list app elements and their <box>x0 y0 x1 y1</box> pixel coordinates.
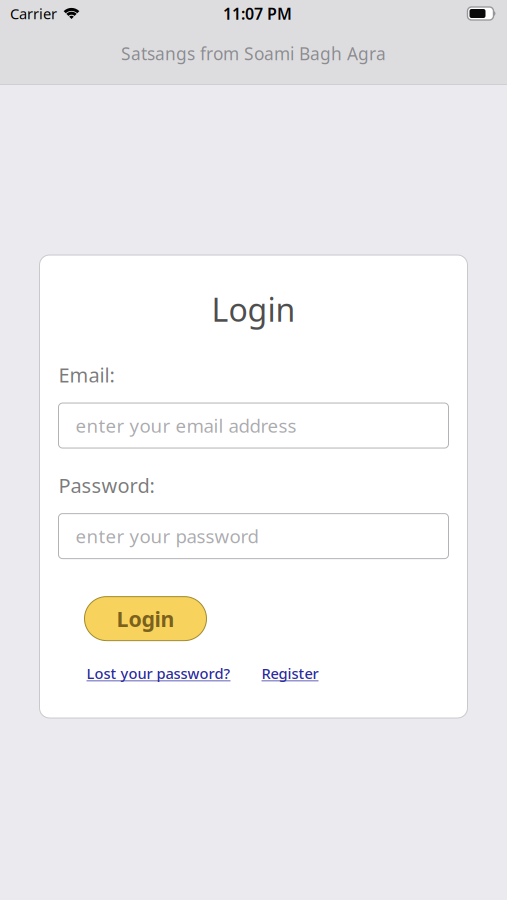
button[interactable]: enter your email address <box>58 403 448 448</box>
staticText: Email: <box>58 361 114 388</box>
staticText: Satsangs from Soami Bagh Agra <box>121 42 386 65</box>
staticText: 11:07 PM <box>223 3 292 24</box>
button[interactable]: enter your password <box>58 514 448 559</box>
button[interactable]: Login <box>84 597 206 641</box>
button[interactable]: Register <box>261 664 318 683</box>
staticText: Password: <box>58 472 154 499</box>
staticText: enter your password <box>75 524 258 548</box>
staticText: Lost your password? <box>86 664 230 683</box>
staticText: Login <box>116 604 174 633</box>
staticText: Login <box>211 288 295 330</box>
button[interactable]: Lost your password? <box>86 664 230 683</box>
staticText: Register <box>261 664 318 683</box>
staticText: Carrier <box>10 4 57 23</box>
staticText: enter your email address <box>75 413 296 438</box>
